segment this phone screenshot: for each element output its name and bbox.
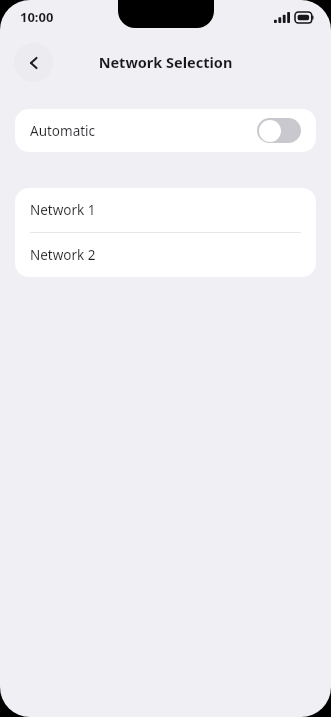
- staticText: Network 2: [30, 246, 96, 264]
- staticText: 10:00: [20, 8, 54, 26]
- button[interactable]: Network 2: [15, 233, 316, 277]
- staticText: Network Selection: [0, 52, 331, 72]
- button[interactable]: Automatic: [15, 109, 316, 152]
- button[interactable]: Back: [14, 43, 53, 82]
- button[interactable]: Network 1: [15, 188, 316, 232]
- staticText: Network 1: [30, 201, 96, 219]
- staticText: Automatic: [30, 122, 257, 140]
- button[interactable]: Automatic toggle, off: [257, 118, 301, 143]
